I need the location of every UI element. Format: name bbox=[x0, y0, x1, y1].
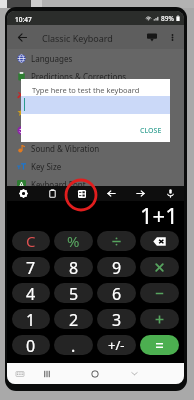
staticText: Appearance bbox=[31, 89, 76, 100]
button[interactable]: Change keyboard bbox=[15, 369, 24, 378]
button[interactable]: . bbox=[54, 335, 93, 355]
staticText: CLOSE bbox=[140, 126, 162, 136]
button[interactable]: Advanced bbox=[7, 193, 184, 211]
button[interactable]: Keyboard Font bbox=[7, 175, 184, 193]
button[interactable]: 5 bbox=[54, 283, 93, 303]
button[interactable]: Test keyboard bbox=[145, 30, 159, 44]
button[interactable]: 4 bbox=[12, 283, 50, 303]
button[interactable]: Recent apps bbox=[41, 368, 52, 379]
button[interactable]: Settings bbox=[18, 188, 29, 199]
button[interactable]: 6 bbox=[97, 283, 136, 303]
staticText: 9 bbox=[112, 257, 122, 277]
button[interactable]: Predictions & Corrections bbox=[7, 67, 184, 85]
button[interactable]: Equals bbox=[140, 335, 179, 355]
staticText: +/- bbox=[108, 336, 125, 354]
staticText: 8 bbox=[69, 257, 79, 277]
staticText: Languages bbox=[31, 53, 73, 64]
button[interactable]: Plus bbox=[140, 309, 179, 329]
button[interactable]: Sound & Vibration bbox=[7, 139, 184, 157]
button[interactable]: 3 bbox=[97, 309, 136, 329]
button[interactable]: Divide bbox=[97, 231, 136, 251]
button[interactable]: Languages bbox=[7, 49, 184, 67]
button[interactable]: % bbox=[54, 231, 93, 251]
staticText: 10:47 bbox=[15, 15, 32, 24]
staticText: Predictions & Corrections bbox=[31, 71, 127, 82]
button[interactable]: Back bbox=[14, 29, 30, 45]
button[interactable]: 0 bbox=[12, 335, 50, 355]
button[interactable]: Move cursor left bbox=[106, 188, 117, 199]
staticText: 7 bbox=[26, 257, 36, 277]
button[interactable]: 1 bbox=[12, 309, 50, 329]
button[interactable]: Minus bbox=[140, 283, 179, 303]
button[interactable]: 9 bbox=[97, 257, 136, 277]
staticText: 6 bbox=[112, 283, 122, 303]
button[interactable]: Key Size bbox=[7, 157, 184, 175]
button[interactable]: 2 bbox=[54, 309, 93, 329]
button[interactable]: Appearance bbox=[7, 85, 184, 103]
staticText: 0 bbox=[26, 335, 36, 355]
staticText: 2 bbox=[69, 309, 79, 329]
button[interactable]: More options bbox=[165, 30, 179, 44]
button[interactable]: Backspace bbox=[140, 231, 179, 251]
button[interactable]: Multiply bbox=[140, 257, 179, 277]
staticText: 5 bbox=[69, 283, 79, 303]
button[interactable]: Hide keyboard bbox=[129, 368, 140, 379]
button[interactable]: Clipboard bbox=[47, 188, 58, 199]
button[interactable]: Voice input bbox=[165, 188, 176, 199]
button[interactable]: C bbox=[12, 231, 50, 251]
staticText: 1+1 bbox=[140, 200, 178, 230]
button[interactable]: Move cursor right bbox=[135, 188, 146, 199]
button[interactable]: Keyboard layouts bbox=[76, 188, 87, 199]
staticText: . bbox=[71, 335, 76, 355]
button[interactable]: 7 bbox=[12, 257, 50, 277]
button[interactable]: +/- bbox=[97, 335, 136, 355]
button[interactable]: Emoji bbox=[7, 121, 184, 139]
staticText: Key Size bbox=[31, 161, 62, 172]
staticText: Advanced bbox=[31, 197, 68, 208]
button[interactable]: 8 bbox=[54, 257, 93, 277]
staticText: Classic Keyboard bbox=[42, 32, 113, 44]
staticText: Keyboard Font bbox=[31, 179, 86, 190]
staticText: 1 bbox=[26, 309, 36, 329]
button[interactable]: Home bbox=[89, 368, 100, 379]
staticText: C bbox=[26, 231, 36, 251]
staticText: Sound & Vibration bbox=[31, 143, 100, 154]
staticText: % bbox=[67, 231, 80, 251]
staticText: 3 bbox=[112, 309, 122, 329]
staticText: Type here to test the keyboard bbox=[32, 85, 140, 95]
staticText: 89% bbox=[161, 14, 174, 23]
button[interactable]: Gesture Typing bbox=[7, 103, 184, 121]
staticText: 4 bbox=[26, 283, 36, 303]
button[interactable]: CLOSE bbox=[132, 120, 170, 142]
staticText: Gesture Typing bbox=[31, 107, 88, 118]
